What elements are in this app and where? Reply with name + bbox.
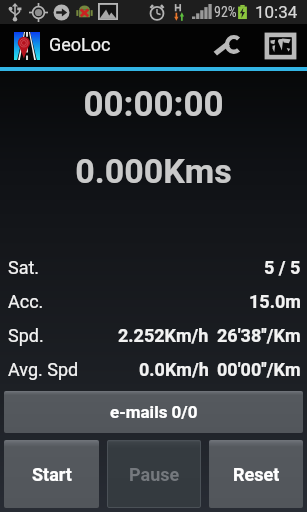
button[interactable]: GeoLoc: [0, 24, 119, 67]
staticText: 26'38''/Km: [217, 325, 301, 346]
button[interactable]: e-mails 0/0: [4, 391, 303, 433]
staticText: Pause: [129, 464, 180, 485]
staticText: 5 / 5: [264, 257, 301, 278]
staticText: Spd.: [8, 325, 44, 346]
button[interactable]: Settings: [202, 24, 252, 67]
staticText: 92%: [214, 4, 237, 20]
staticText: 0.0Km/h: [139, 359, 209, 380]
button[interactable]: Start: [4, 440, 99, 508]
button[interactable]: Reset: [209, 440, 303, 508]
staticText: e-mails 0/0: [110, 402, 198, 422]
staticText: Start: [32, 464, 72, 485]
staticText: Reset: [233, 464, 280, 485]
staticText: Avg. Spd: [8, 359, 79, 380]
staticText: 00:00:00: [83, 84, 224, 125]
staticText: 2.252Km/h: [118, 325, 209, 346]
button[interactable]: Map: [255, 24, 305, 67]
staticText: Sat.: [8, 257, 40, 278]
staticText: Acc.: [8, 291, 44, 312]
staticText: 15.0m: [249, 291, 301, 312]
staticText: 10:34: [255, 2, 298, 22]
staticText: GeoLoc: [49, 34, 111, 55]
button[interactable]: Pause: [107, 440, 201, 508]
staticText: 00'00''/Km: [217, 359, 301, 380]
staticText: 0.000Kms: [75, 151, 232, 191]
